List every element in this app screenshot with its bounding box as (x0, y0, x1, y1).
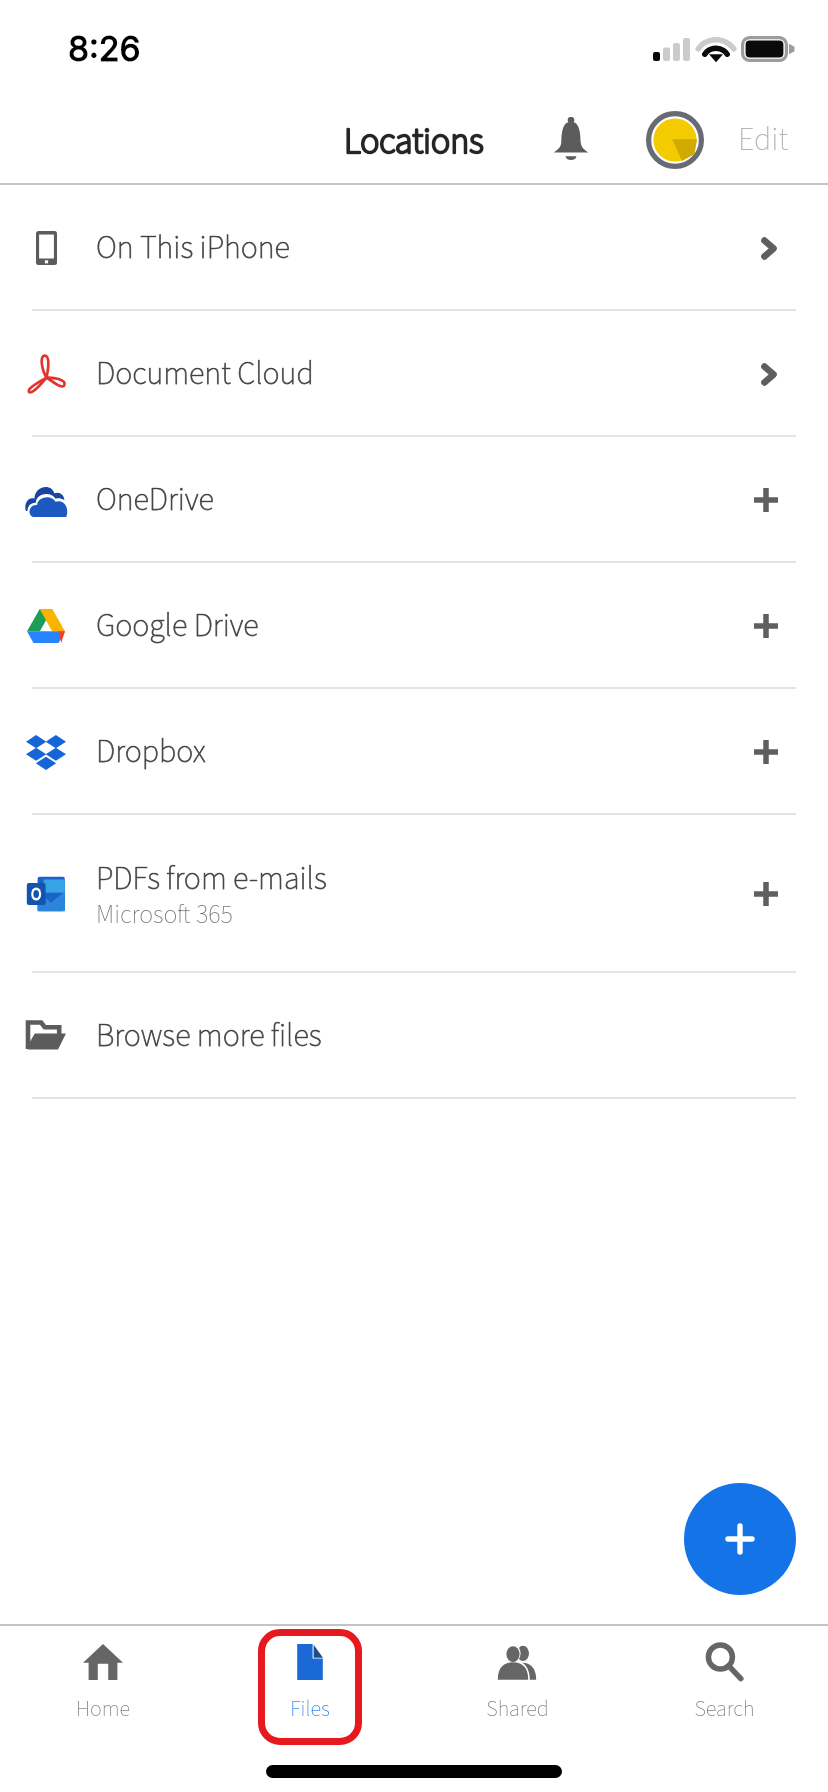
staticText: Document Cloud (96, 351, 314, 397)
button[interactable]: Edit (721, 104, 805, 176)
staticText: PDFs from e-mails (96, 856, 327, 902)
button[interactable]: OneDrive (0, 437, 828, 563)
button[interactable]: Document Cloud (0, 311, 828, 437)
staticText: Browse more files (96, 1013, 322, 1059)
staticText: Shared (486, 1693, 549, 1724)
staticText: Microsoft 365 (96, 896, 233, 933)
staticText: Dropbox (96, 729, 206, 775)
staticText: Google Drive (96, 603, 259, 649)
staticText: Document Cloud (96, 351, 314, 397)
staticText: Files (290, 1693, 330, 1724)
staticText: Browse more files (96, 1013, 322, 1059)
staticText: Edit (738, 117, 789, 163)
staticText: Search (694, 1693, 755, 1724)
button[interactable]: Google Drive (0, 563, 828, 689)
staticText: On This iPhone (96, 225, 290, 271)
button[interactable]: Search (672, 1629, 776, 1745)
staticText: Google Drive (96, 603, 259, 649)
staticText: Locations (344, 116, 484, 167)
button[interactable]: Files (258, 1629, 362, 1745)
staticText: Home (76, 1693, 130, 1724)
button[interactable]: Browse more files (0, 973, 828, 1099)
staticText: Locations (344, 116, 484, 167)
button[interactable]: Shared (465, 1629, 569, 1745)
staticText: PDFs from e-mails (96, 856, 327, 902)
button[interactable]: Dropbox (0, 689, 828, 815)
button[interactable]: Notifications (531, 98, 611, 178)
staticText: Dropbox (96, 729, 206, 775)
staticText: On This iPhone (96, 225, 290, 271)
button[interactable]: Home (51, 1629, 155, 1745)
button[interactable]: Create new file (684, 1483, 796, 1595)
button[interactable]: On This iPhone (0, 185, 828, 311)
staticText: OneDrive (96, 477, 214, 523)
button[interactable]: PDFs from e-mails (0, 815, 828, 973)
staticText: 8:26 (68, 28, 141, 69)
button[interactable]: Profile (639, 104, 711, 176)
staticText: OneDrive (96, 477, 214, 523)
